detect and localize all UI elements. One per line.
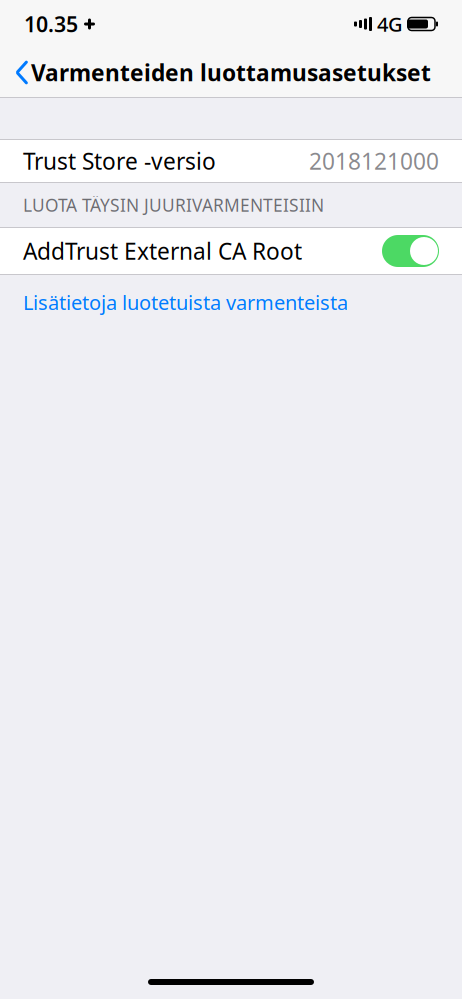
button[interactable]: Back bbox=[0, 50, 44, 94]
staticText: AddTrust External CA Root bbox=[23, 236, 302, 266]
staticText: Trust Store -versio bbox=[23, 146, 216, 176]
staticText: Varmenteiden luottamusasetukset bbox=[31, 57, 431, 87]
button[interactable]: AddTrust External CA Root bbox=[0, 228, 462, 274]
staticText: 4G bbox=[377, 11, 403, 37]
staticText: 10.35 bbox=[24, 10, 78, 38]
staticText: 2018121000 bbox=[309, 146, 439, 176]
button[interactable]: Lisätietoja luotetuista varmenteista bbox=[23, 281, 348, 324]
staticText: Lisätietoja luotetuista varmenteista bbox=[23, 289, 348, 316]
staticText: LUOTA TÄYSIN JUURIVARMENTEISIIN bbox=[23, 193, 324, 216]
